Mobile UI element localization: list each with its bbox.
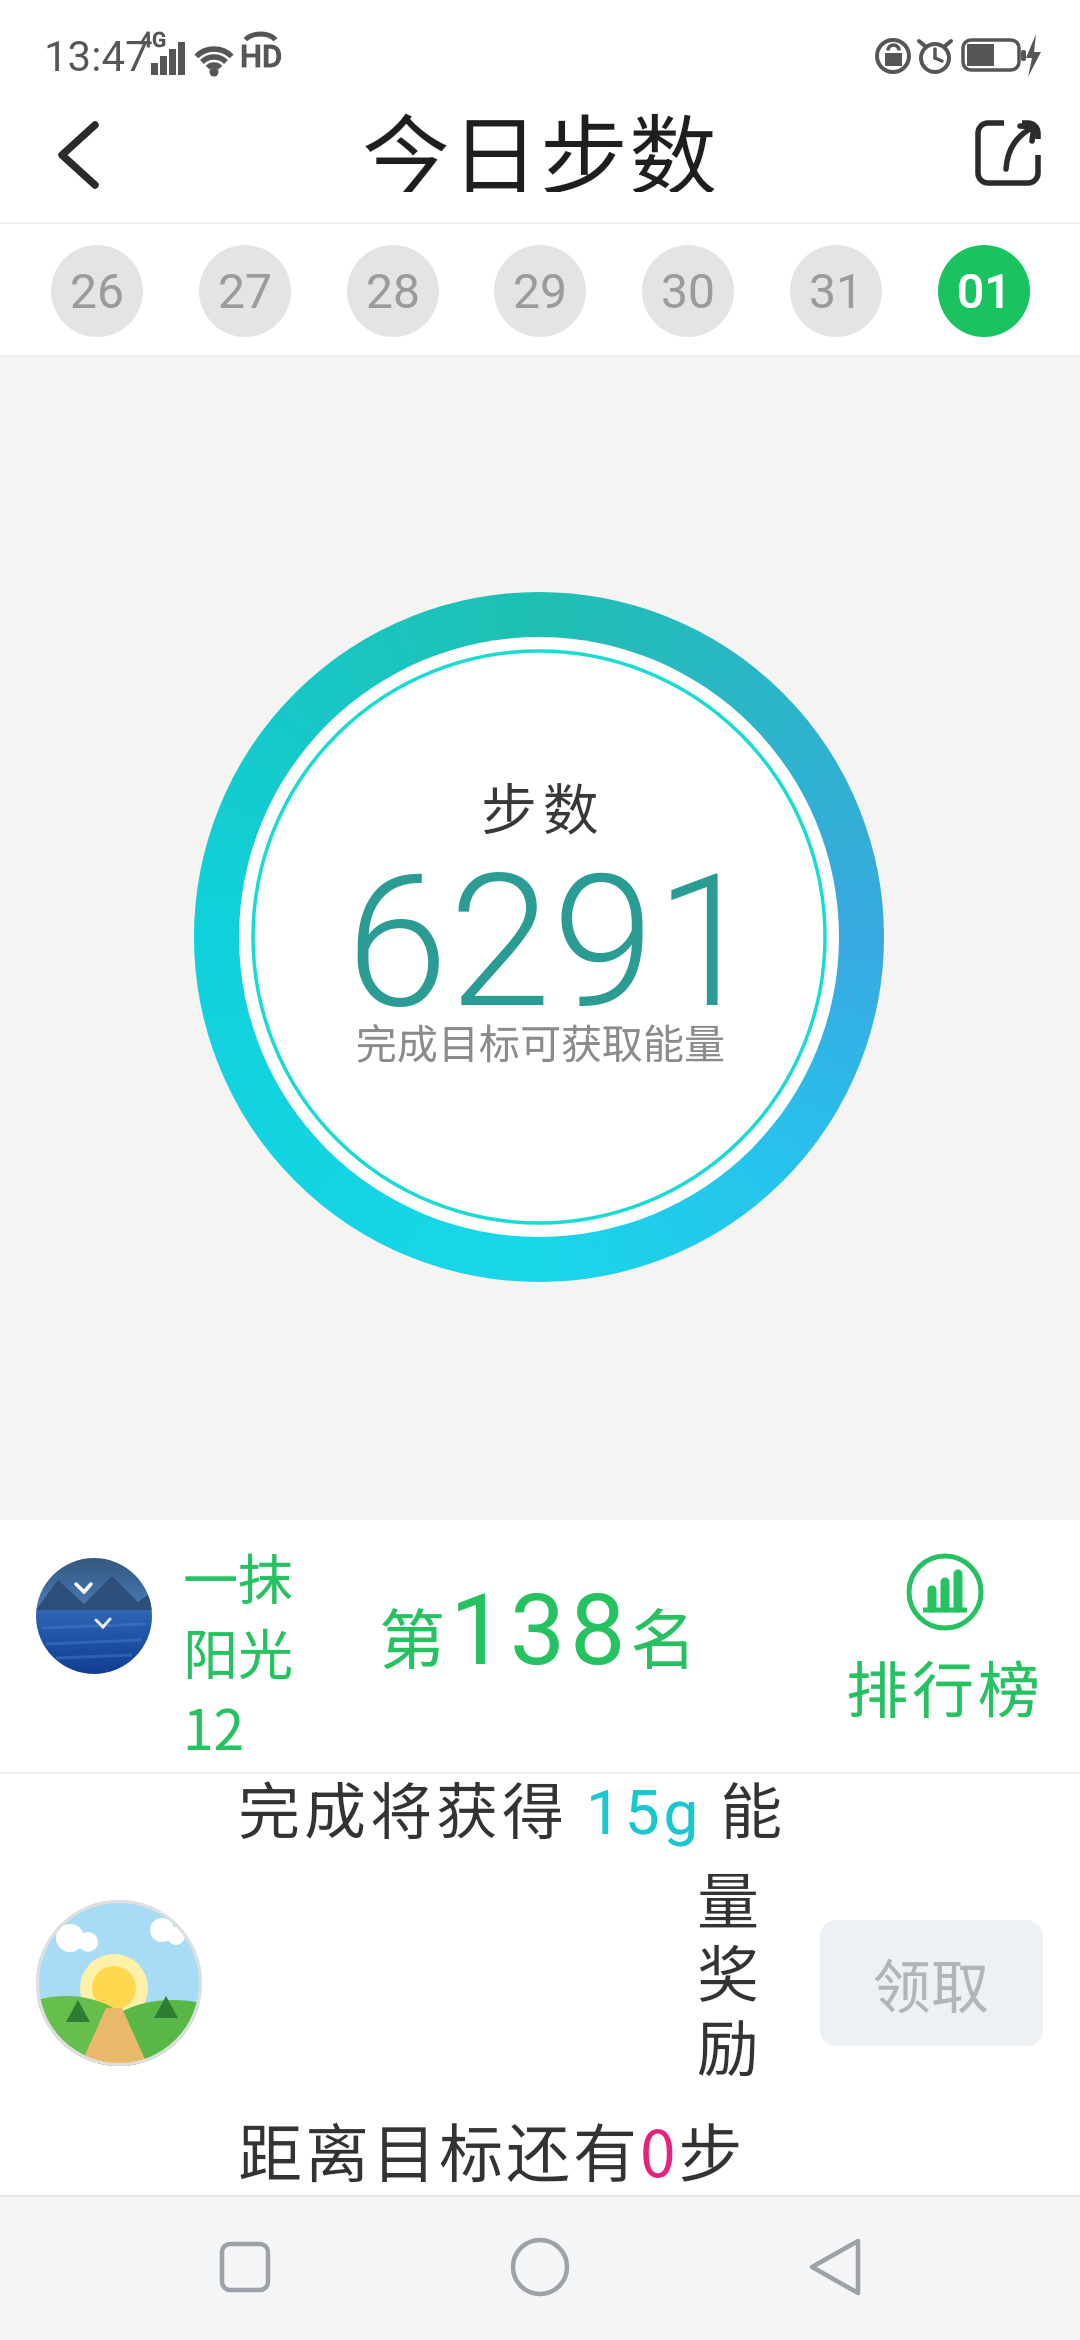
staticText: 28 [366, 263, 420, 319]
staticText: 今日步数 [362, 86, 719, 192]
staticText: 距离目标还有0步 [238, 2103, 746, 2196]
button[interactable] [966, 111, 1050, 195]
button[interactable]: 排行榜 [840, 1540, 1050, 1740]
staticText: 量 [697, 1852, 760, 1942]
staticText: 奖 [697, 1925, 760, 2015]
button[interactable] [480, 2207, 600, 2327]
staticText: 30 [661, 263, 715, 319]
staticText: 26 [70, 263, 124, 319]
staticText: 排行榜 [846, 1641, 1045, 1731]
staticText: 完成目标可获取能量 [356, 1011, 725, 1070]
staticText: 一抹阳光12 [183, 1536, 305, 1766]
button[interactable]: 27 [199, 245, 291, 337]
staticText: 完成将获得 15g 能 [238, 1762, 787, 1852]
staticText: 第138名 [379, 1573, 702, 1688]
staticText: 步数 [478, 765, 602, 846]
button[interactable]: 30 [642, 245, 734, 337]
staticText: 31 [809, 263, 863, 319]
staticText: 01 [957, 263, 1012, 319]
button[interactable]: 26 [51, 245, 143, 337]
button[interactable] [776, 2207, 896, 2327]
staticText: 领取 [873, 1941, 990, 2025]
button[interactable] [185, 2207, 305, 2327]
staticText: 13:47 [44, 32, 149, 81]
staticText: HD [240, 38, 283, 74]
staticText: 27 [218, 263, 272, 319]
button[interactable]: 领取 [820, 1920, 1043, 2046]
staticText: 4G [140, 28, 167, 52]
staticText: 29 [513, 263, 567, 319]
button[interactable]: 29 [494, 245, 586, 337]
button[interactable]: 28 [347, 245, 439, 337]
button[interactable]: 01 [938, 245, 1030, 337]
staticText: 励 [697, 1999, 760, 2089]
staticText: 6291 [346, 834, 759, 1024]
button[interactable] [30, 110, 120, 200]
button[interactable]: 31 [790, 245, 882, 337]
